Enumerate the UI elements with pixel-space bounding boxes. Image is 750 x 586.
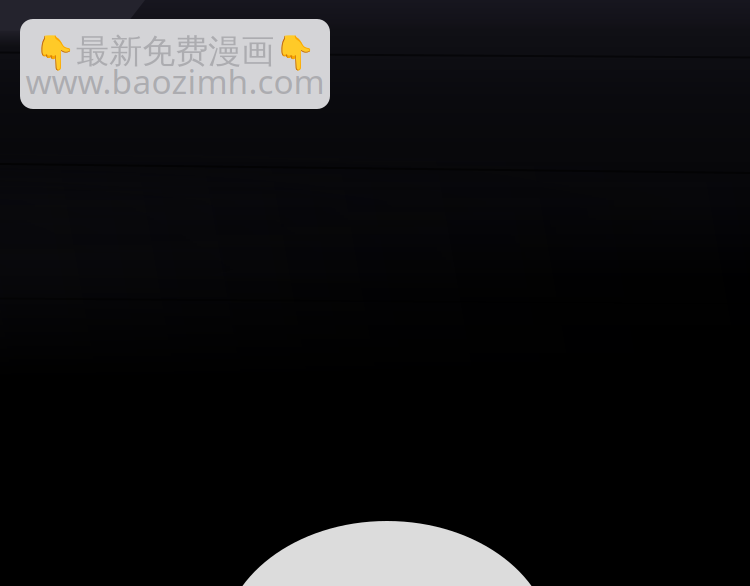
staticText: 👇最新免费漫画👇 [34, 31, 316, 72]
staticText: www.baozimh.com [25, 59, 324, 103]
button[interactable]: 👇最新免费漫画👇 [20, 19, 330, 109]
